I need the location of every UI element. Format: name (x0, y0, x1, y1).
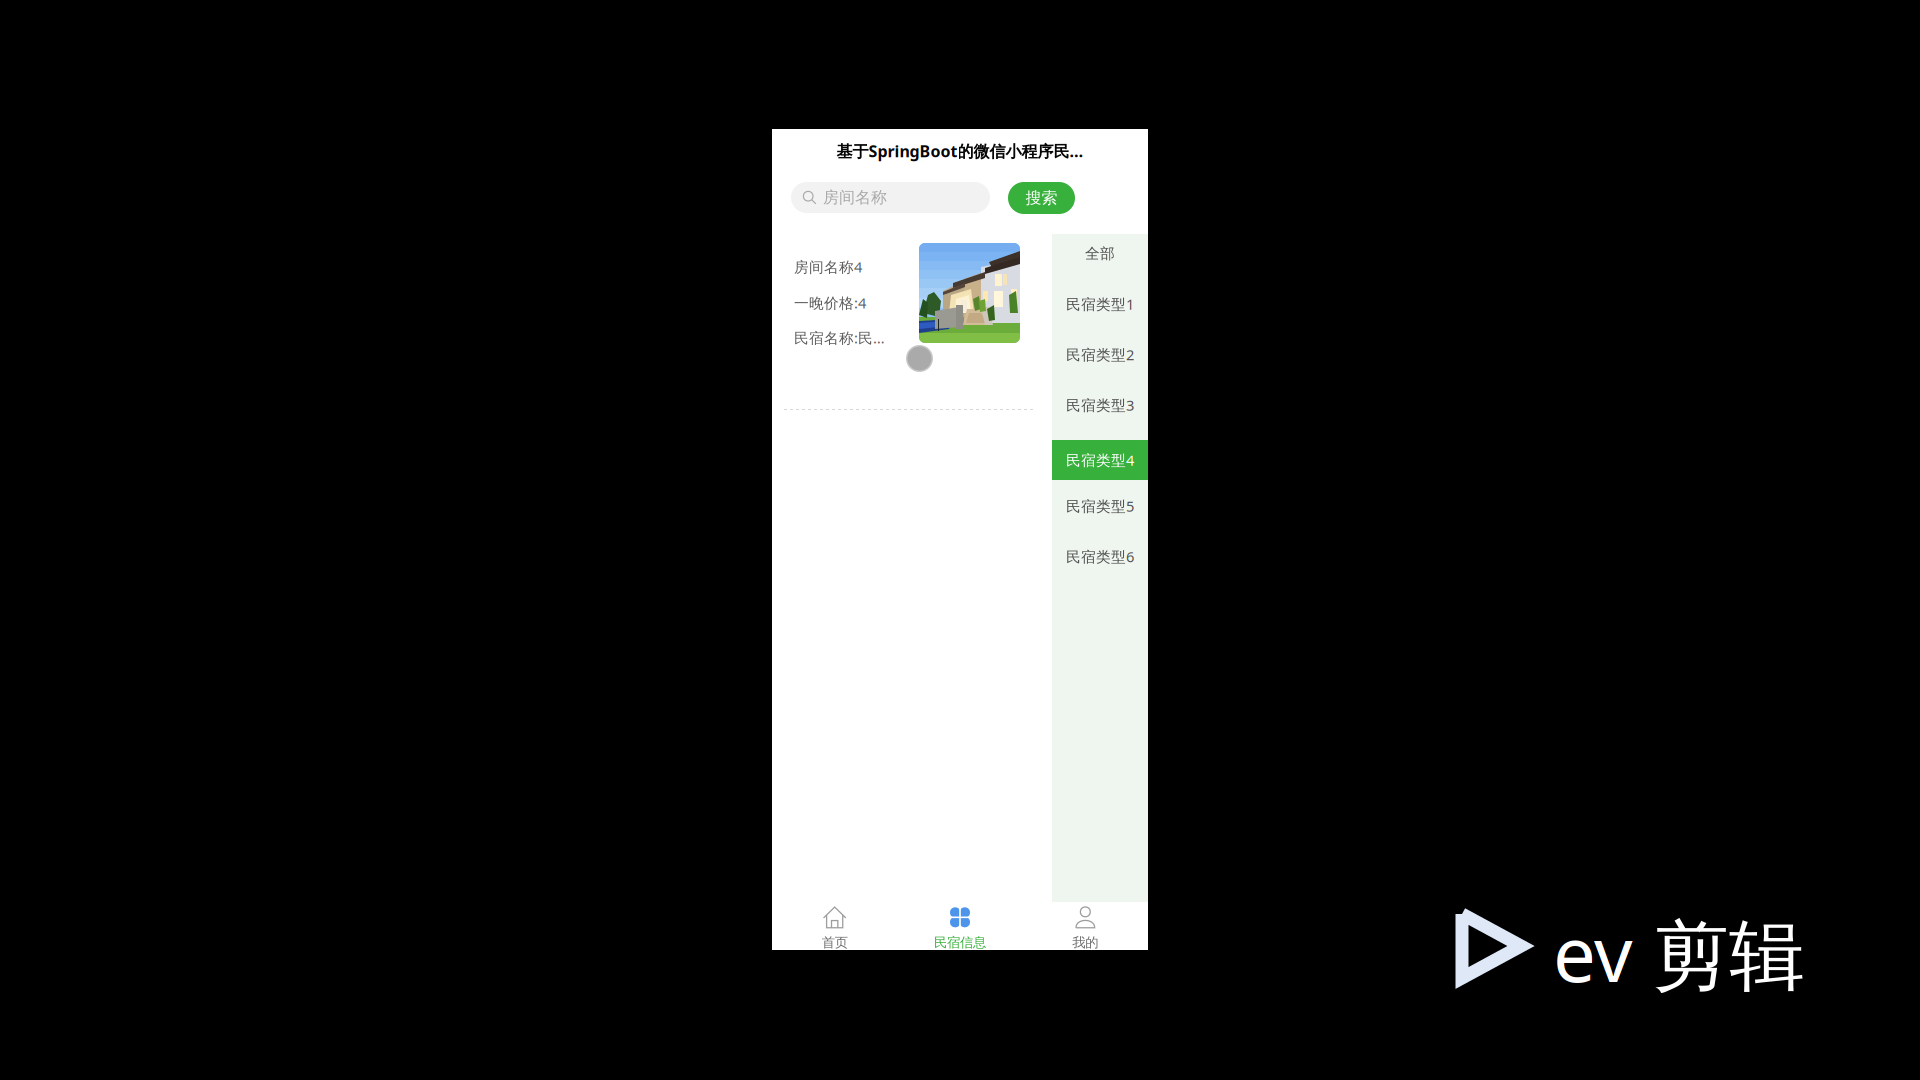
button[interactable]: 全部 (1052, 228, 1148, 279)
staticText: 民宿名称:民… (794, 328, 885, 347)
staticText: 房间名称 (823, 188, 887, 207)
button[interactable]: 民宿类型6 (1052, 531, 1148, 582)
staticText: 基于SpringBoot的微信小程序民… (836, 140, 1083, 162)
button[interactable]: 房间名称4 (772, 234, 1052, 414)
button[interactable]: 民宿类型3 (1052, 379, 1148, 430)
staticText: 民宿类型2 (1066, 345, 1134, 364)
staticText: 搜索 (1025, 188, 1057, 208)
staticText: 民宿类型4 (1066, 450, 1134, 470)
staticText: 民宿类型5 (1066, 496, 1134, 516)
staticText: 全部 (1085, 244, 1115, 262)
button[interactable]: 民宿类型5 (1052, 480, 1148, 531)
staticText: 一晚价格:4 (794, 293, 866, 312)
staticText: ev 剪辑 (1553, 902, 1805, 1003)
staticText: 首页 (822, 934, 848, 951)
button[interactable]: 民宿类型2 (1052, 329, 1148, 380)
staticText: 民宿类型6 (1066, 547, 1134, 566)
staticText: 民宿信息 (934, 934, 986, 951)
button[interactable]: 房间名称 (791, 182, 990, 213)
button[interactable]: 民宿类型4 (1052, 440, 1148, 480)
staticText: 民宿类型1 (1066, 294, 1134, 314)
button[interactable]: 首页 (772, 902, 897, 950)
staticText: 房间名称4 (794, 257, 862, 276)
button[interactable]: 搜索 (1008, 182, 1075, 214)
staticText: 我的 (1072, 934, 1098, 951)
button[interactable]: 我的 (1023, 902, 1148, 950)
staticText: 民宿类型3 (1066, 395, 1134, 415)
button[interactable]: 民宿类型1 (1052, 278, 1148, 329)
button[interactable]: 民宿信息 (897, 902, 1023, 950)
